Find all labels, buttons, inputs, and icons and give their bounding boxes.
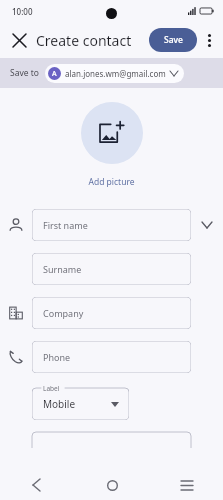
button[interactable]: Label (32, 384, 129, 420)
staticText: Save (164, 34, 183, 46)
button[interactable]: More options (198, 29, 220, 51)
button[interactable]: Recent apps (173, 471, 201, 499)
staticText: Company (43, 307, 84, 319)
button[interactable]: Save (149, 28, 197, 52)
staticText: Surname (43, 263, 82, 275)
button[interactable]: A (45, 64, 184, 83)
button[interactable]: Surname (32, 253, 191, 285)
button[interactable]: Add picture (81, 102, 143, 164)
button[interactable]: Close (6, 27, 32, 53)
staticText: Phone (43, 351, 71, 363)
staticText: Create contact (36, 31, 132, 50)
button[interactable] (32, 432, 191, 448)
staticText: First name (43, 219, 88, 231)
staticText: A (52, 69, 57, 79)
button[interactable]: Add picture (84, 174, 139, 190)
button[interactable]: Back (22, 471, 50, 499)
staticText: Save to (10, 67, 39, 79)
button[interactable]: Company (32, 297, 191, 329)
staticText: 10:00 (12, 6, 33, 17)
staticText: Add picture (88, 176, 135, 188)
button[interactable]: Home (98, 471, 126, 499)
staticText: Label (43, 384, 60, 393)
button[interactable]: Expand name fields (196, 214, 218, 236)
staticText: Mobile (43, 397, 76, 411)
button[interactable]: Phone (32, 341, 191, 373)
button[interactable]: First name (32, 209, 191, 241)
staticText: alan.jones.wm@gmail.com (65, 68, 166, 79)
